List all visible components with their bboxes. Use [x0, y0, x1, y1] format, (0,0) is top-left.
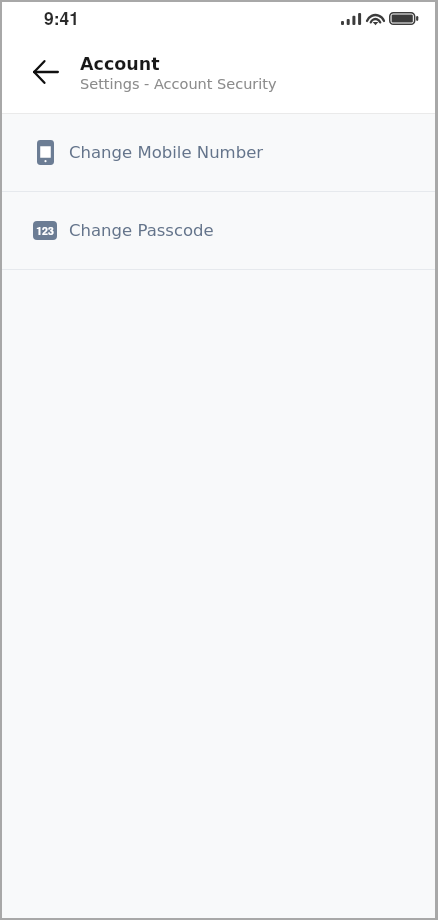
staticText: Change Passcode: [69, 221, 214, 240]
button[interactable]: Change Mobile Number: [2, 114, 435, 191]
staticText: Account: [80, 54, 160, 74]
staticText: 9:41: [44, 5, 80, 30]
button[interactable]: 123: [2, 192, 435, 269]
staticText: 123: [36, 223, 54, 238]
staticText: Change Mobile Number: [69, 143, 264, 162]
staticText: Settings - Account Security: [80, 76, 277, 93]
button[interactable]: Back: [26, 52, 66, 92]
